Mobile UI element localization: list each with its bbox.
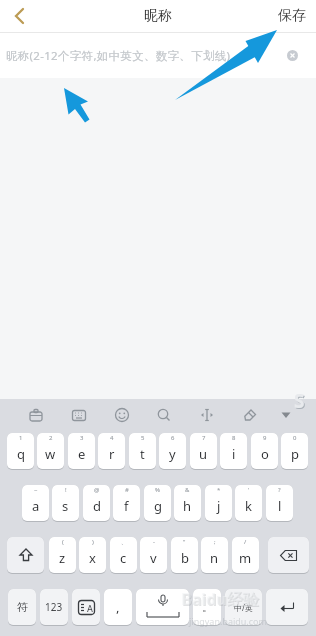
staticText: 昵称 [144, 7, 172, 25]
button[interactable]: 6 [159, 433, 186, 469]
staticText: 4 [110, 434, 114, 442]
button[interactable] [195, 403, 219, 427]
button[interactable] [238, 403, 262, 427]
staticText: n [210, 549, 219, 567]
staticText: r [109, 445, 115, 463]
staticText: ~ [34, 486, 38, 494]
button[interactable]: % [144, 485, 171, 521]
staticText: * [217, 486, 221, 494]
button[interactable]: 符 [8, 589, 36, 625]
button[interactable]: 4 [98, 433, 125, 469]
staticText: / [244, 538, 247, 546]
staticText: w [45, 445, 56, 463]
staticText: Baidu经验 [182, 589, 260, 611]
staticText: 1 [19, 434, 23, 442]
button[interactable]: ' [235, 485, 262, 521]
button[interactable]: 0 [281, 433, 308, 469]
staticText: o [261, 445, 269, 463]
staticText: 6 [171, 434, 175, 442]
button[interactable]: 昵称(2-12个字符,如中英文、数字、下划线) [0, 33, 316, 78]
staticText: - [153, 538, 155, 546]
button[interactable]: 5 [129, 433, 156, 469]
button[interactable]: ~ [22, 485, 49, 521]
staticText: y [169, 445, 176, 463]
button[interactable]: A [72, 589, 100, 625]
button[interactable]: @ [83, 485, 110, 521]
button[interactable]: ; [201, 537, 228, 573]
button[interactable]: 9 [251, 433, 278, 469]
button[interactable] [7, 537, 44, 573]
button[interactable]: - [140, 537, 167, 573]
staticText: 中/英 [234, 602, 253, 613]
staticText: k [245, 497, 252, 515]
button[interactable]: ) [79, 537, 106, 573]
staticText: g [154, 497, 162, 515]
button[interactable]: / [232, 537, 259, 573]
button[interactable]: ( [49, 537, 76, 573]
button[interactable]: 。 [193, 589, 221, 625]
button[interactable] [276, 405, 296, 425]
button[interactable] [110, 403, 134, 427]
staticText: ; [214, 538, 216, 546]
staticText: % [155, 486, 160, 494]
button[interactable] [268, 537, 309, 573]
staticText: s [62, 497, 69, 515]
staticText: u [199, 445, 208, 463]
staticText: 符 [17, 600, 28, 614]
button[interactable]: 3 [68, 433, 95, 469]
staticText: m [239, 549, 252, 567]
staticText: 3 [80, 434, 84, 442]
button[interactable]: & [174, 485, 201, 521]
staticText: & [185, 486, 190, 494]
button[interactable] [152, 403, 176, 427]
staticText: e [78, 445, 86, 463]
staticText: c [120, 549, 127, 567]
staticText: 保存 [278, 7, 306, 25]
staticText: ! [65, 486, 67, 494]
staticText: jingyan.baidu.com [189, 615, 267, 627]
staticText: j [217, 497, 221, 515]
button[interactable]: 中/英 [225, 589, 262, 625]
staticText: q [17, 445, 25, 463]
staticText: ( [62, 538, 64, 546]
staticText: 、 [121, 538, 127, 546]
button[interactable] [136, 589, 189, 625]
button[interactable]: 8 [220, 433, 247, 469]
button[interactable]: * [205, 485, 232, 521]
button[interactable] [67, 403, 91, 427]
button[interactable]: 1 [7, 433, 34, 469]
button[interactable]: # [113, 485, 140, 521]
button[interactable]: 2 [37, 433, 64, 469]
button[interactable]: ! [52, 485, 79, 521]
button[interactable]: ? [266, 485, 293, 521]
staticText: S [294, 388, 305, 414]
button[interactable]: 7 [190, 433, 217, 469]
staticText: S [295, 389, 306, 415]
staticText: x [89, 549, 96, 567]
staticText: @ [94, 486, 100, 494]
staticText: # [125, 486, 129, 494]
staticText: p [291, 445, 299, 463]
staticText: 昵称(2-12个字符,如中英文、数字、下划线) [6, 48, 231, 64]
staticText: b [181, 549, 189, 567]
staticText: l [278, 497, 282, 515]
staticText: , [116, 598, 120, 616]
button[interactable] [24, 403, 48, 427]
staticText: i [232, 445, 236, 463]
staticText: ) [92, 538, 94, 546]
staticText: 7 [202, 434, 206, 442]
button[interactable]: " [171, 537, 198, 573]
button[interactable]: , [104, 589, 132, 625]
button[interactable] [6, 2, 34, 30]
button[interactable] [287, 50, 298, 61]
staticText: 2 [49, 434, 53, 442]
staticText: h [183, 497, 192, 515]
button[interactable]: 、 [110, 537, 137, 573]
button[interactable] [266, 589, 308, 625]
button[interactable]: 123 [40, 589, 68, 625]
staticText: z [59, 549, 66, 567]
staticText: 5 [141, 434, 145, 442]
staticText: v [150, 549, 157, 567]
button[interactable]: 保存 [278, 7, 306, 25]
staticText: 123 [45, 600, 63, 614]
